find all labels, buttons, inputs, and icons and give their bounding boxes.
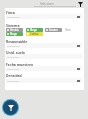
button[interactable]: Secano [45,28,62,32]
staticText: Seleccione [7,15,20,18]
staticText: Otro [65,28,71,32]
staticText: Densidad [6,73,22,78]
button[interactable]: Seleccione [6,78,82,83]
staticText: Riego [10,32,17,36]
staticText: Seleccione [7,79,20,82]
staticText: Riego [30,28,37,32]
staticText: Unid. suelo [6,50,25,55]
staticText: Seleccione [7,44,20,47]
staticText: Fecha muestreo [6,62,34,67]
button[interactable]: Riego [26,28,43,32]
staticText: Seleccione [7,67,20,70]
button[interactable]: Seleccione [6,14,82,19]
button[interactable]: Seleccione [6,66,82,71]
staticText: Finca [6,10,15,15]
staticText: Secano [49,28,58,32]
staticText: Sin sist. [10,28,20,32]
button[interactable]: Sin sist. [6,28,23,32]
button[interactable]: Cultivo [26,32,43,36]
button[interactable]: Seleccione [6,54,82,59]
staticText: Sistema [6,23,20,28]
staticText: Seleccione [7,55,20,58]
button[interactable]: Filter [77,1,84,8]
button[interactable]: Seleccione [6,43,82,48]
staticText: Responsable [6,39,28,44]
button[interactable]: Riego [6,32,23,36]
button[interactable]: Apply filter [2,99,19,116]
staticText: Cultivo [30,32,39,36]
staticText: Seleccione [40,2,54,6]
